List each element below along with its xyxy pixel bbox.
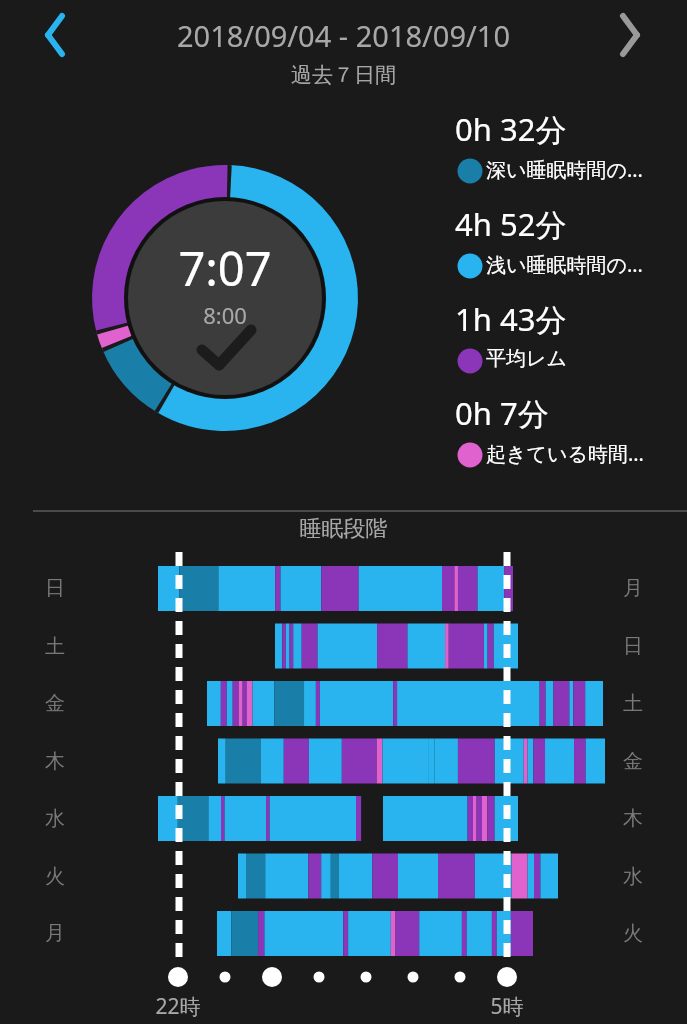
staticText: 水 [608, 864, 658, 889]
button[interactable]: Next week [611, 6, 677, 72]
staticText: 月 [608, 576, 658, 601]
staticText: 起きている時間… [486, 440, 644, 467]
staticText: 4h 52分 [455, 203, 567, 245]
staticText: 火 [30, 864, 80, 889]
staticText: 5時 [462, 992, 552, 1020]
staticText: 金 [608, 749, 658, 774]
staticText: 2018/09/04 - 2018/09/10 [110, 16, 577, 55]
staticText: 日 [608, 634, 658, 659]
button[interactable]: Previous week [10, 6, 76, 72]
staticText: 金 [30, 691, 80, 716]
staticText: 水 [30, 806, 80, 831]
button[interactable]: 0h 7分 [455, 392, 687, 480]
staticText: 深い睡眠時間の… [486, 156, 643, 183]
staticText: 木 [608, 806, 658, 831]
button[interactable]: 0h 32分 [455, 108, 687, 196]
staticText: 睡眠段階 [100, 515, 587, 543]
staticText: 8:00 [125, 300, 325, 330]
staticText: 平均レム [486, 346, 567, 371]
button[interactable]: 4h 52分 [455, 203, 687, 291]
staticText: 1h 43分 [455, 298, 567, 340]
staticText: 7:07 [125, 236, 325, 294]
staticText: 月 [30, 921, 80, 946]
staticText: 火 [608, 921, 658, 946]
staticText: 0h 7分 [455, 392, 549, 434]
staticText: 土 [608, 691, 658, 716]
button[interactable]: 1h 43分 [455, 298, 687, 386]
staticText: 過去７日間 [110, 62, 577, 88]
staticText: 土 [30, 634, 80, 659]
staticText: 木 [30, 749, 80, 774]
staticText: 日 [30, 576, 80, 601]
staticText: 22時 [133, 992, 223, 1020]
staticText: 0h 32分 [455, 108, 567, 150]
staticText: 浅い睡眠時間の… [486, 251, 643, 278]
